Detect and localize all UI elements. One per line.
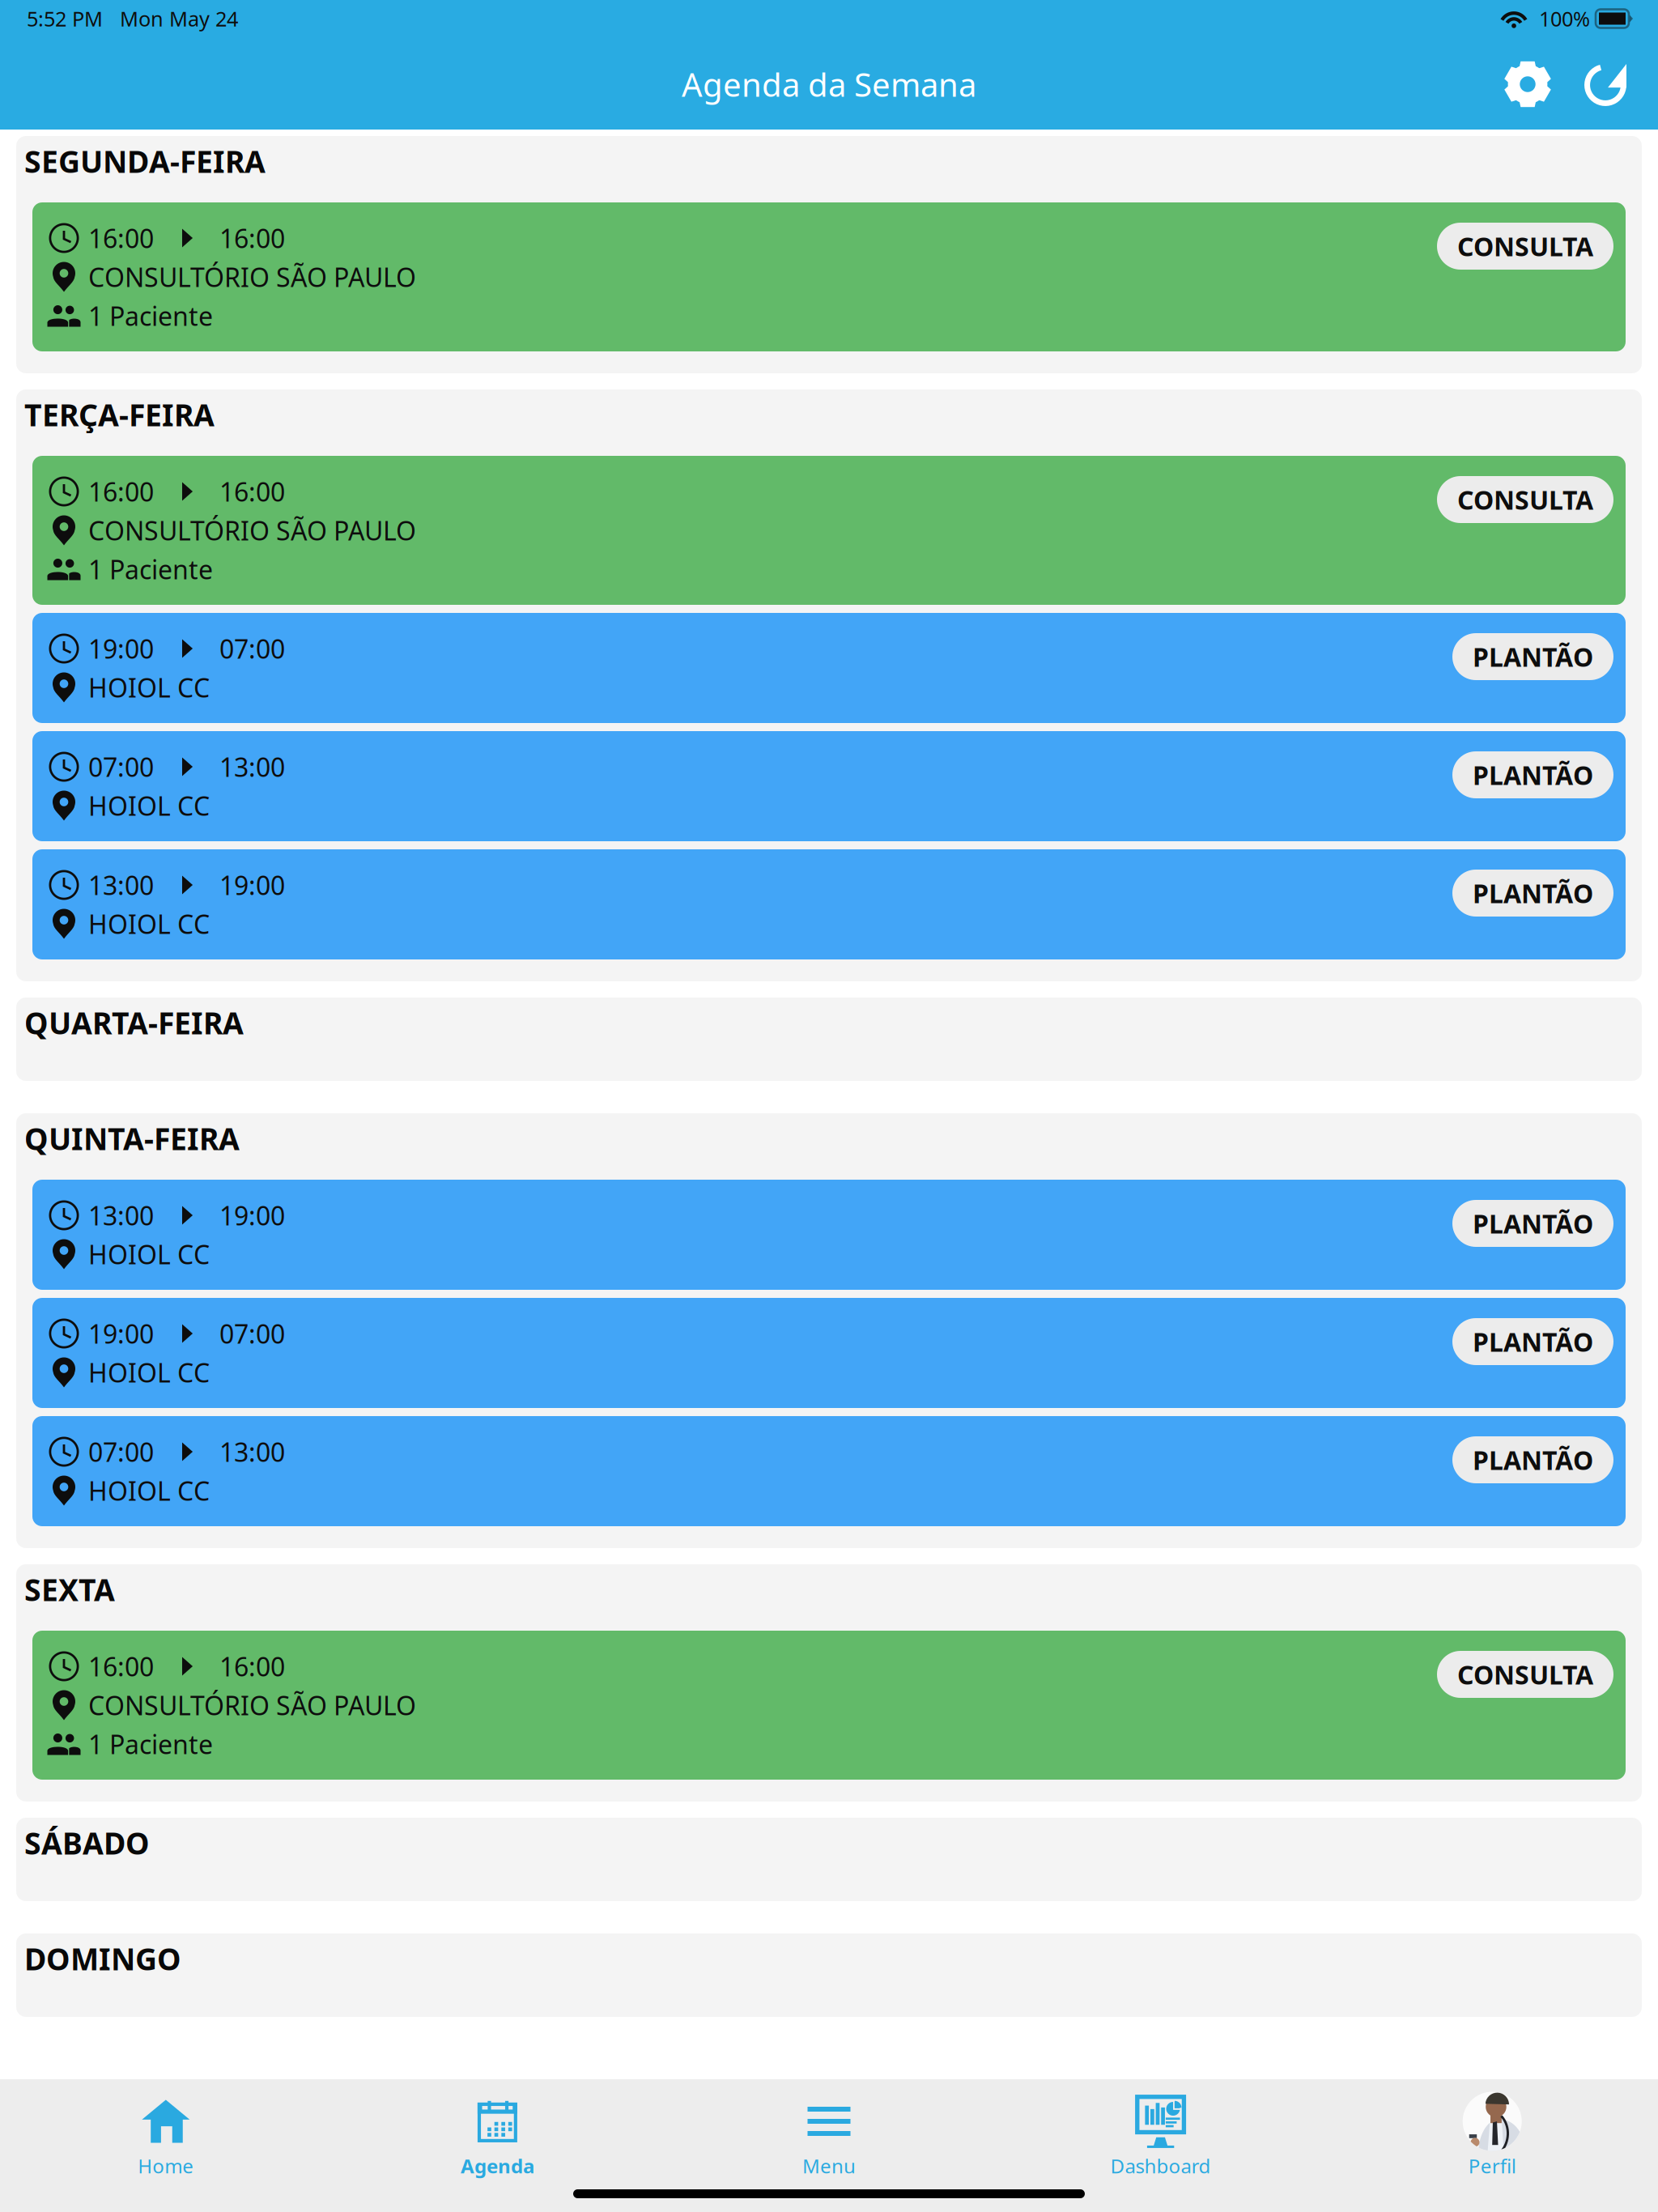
- staticText: PLANTÃO: [1473, 639, 1593, 674]
- staticText: 19:00: [219, 868, 285, 902]
- staticText: TERÇA-FEIRA: [24, 394, 215, 435]
- button[interactable]: 13:00: [32, 849, 1626, 959]
- staticText: 16:00: [219, 1649, 285, 1684]
- staticText: CONSULTÓRIO SÃO PAULO: [88, 513, 416, 548]
- staticText: CONSULTÓRIO SÃO PAULO: [88, 260, 416, 294]
- staticText: 100%: [1528, 5, 1596, 32]
- button[interactable]: 07:00: [32, 1416, 1626, 1526]
- staticText: HOIOL CC: [88, 1237, 210, 1271]
- button[interactable]: 07:00: [32, 731, 1626, 841]
- staticText: CONSULTA: [1457, 1657, 1593, 1692]
- button[interactable]: Dashboard: [995, 2079, 1326, 2176]
- button[interactable]: 19:00: [32, 613, 1626, 723]
- staticText: 07:00: [219, 1316, 285, 1351]
- staticText: CONSULTA: [1457, 482, 1593, 517]
- staticText: 13:00: [219, 1435, 285, 1469]
- staticText: 1 Paciente: [88, 299, 213, 333]
- staticText: 1 Paciente: [88, 552, 213, 586]
- staticText: PLANTÃO: [1473, 1206, 1593, 1241]
- button[interactable]: 19:00: [32, 1298, 1626, 1408]
- staticText: Perfil: [1468, 2153, 1516, 2179]
- staticText: SEGUNDA-FEIRA: [24, 141, 266, 181]
- button[interactable]: Atualizar: [1567, 49, 1644, 130]
- staticText: Home: [138, 2153, 194, 2179]
- staticText: Mon May 24: [103, 5, 238, 32]
- staticText: 13:00: [219, 750, 285, 784]
- staticText: HOIOL CC: [88, 907, 210, 941]
- staticText: HOIOL CC: [88, 670, 210, 705]
- button[interactable]: Agenda: [332, 2079, 663, 2176]
- button[interactable]: Menu: [663, 2079, 995, 2176]
- staticText: 07:00: [88, 750, 154, 784]
- staticText: PLANTÃO: [1473, 1443, 1593, 1477]
- button[interactable]: Configurações: [1489, 49, 1567, 130]
- staticText: 19:00: [88, 631, 154, 666]
- button[interactable]: 16:00: [32, 202, 1626, 351]
- staticText: HOIOL CC: [88, 1355, 210, 1390]
- staticText: CONSULTÓRIO SÃO PAULO: [88, 1688, 416, 1722]
- button[interactable]: Perfil: [1326, 2079, 1658, 2176]
- button[interactable]: Home: [0, 2079, 332, 2176]
- staticText: 19:00: [88, 1316, 154, 1351]
- staticText: Dashboard: [1110, 2153, 1211, 2179]
- button[interactable]: 13:00: [32, 1180, 1626, 1290]
- staticText: 19:00: [219, 1198, 285, 1233]
- button[interactable]: 16:00: [32, 456, 1626, 605]
- staticText: PLANTÃO: [1473, 1324, 1593, 1359]
- staticText: 13:00: [88, 1198, 154, 1233]
- staticText: 1 Paciente: [88, 1727, 213, 1761]
- button[interactable]: 16:00: [32, 1631, 1626, 1780]
- staticText: Menu: [802, 2153, 856, 2179]
- staticText: QUARTA-FEIRA: [24, 1003, 244, 1043]
- staticText: 16:00: [88, 1649, 154, 1684]
- staticText: SÁBADO: [24, 1823, 150, 1863]
- staticText: PLANTÃO: [1473, 876, 1593, 910]
- staticText: 16:00: [88, 474, 154, 509]
- staticText: 07:00: [219, 631, 285, 666]
- staticText: HOIOL CC: [88, 788, 210, 823]
- staticText: 13:00: [88, 868, 154, 902]
- staticText: 16:00: [219, 474, 285, 509]
- staticText: Agenda: [461, 2153, 534, 2179]
- staticText: DOMINGO: [24, 1938, 181, 1979]
- staticText: SEXTA: [24, 1569, 115, 1609]
- staticText: Agenda da Semana: [682, 63, 976, 106]
- staticText: QUINTA-FEIRA: [24, 1118, 240, 1158]
- staticText: HOIOL CC: [88, 1473, 210, 1508]
- staticText: 07:00: [88, 1435, 154, 1469]
- staticText: 16:00: [88, 221, 154, 255]
- staticText: 16:00: [219, 221, 285, 255]
- staticText: PLANTÃO: [1473, 758, 1593, 792]
- staticText: CONSULTA: [1457, 229, 1593, 263]
- staticText: 5:52 PM: [27, 5, 103, 32]
